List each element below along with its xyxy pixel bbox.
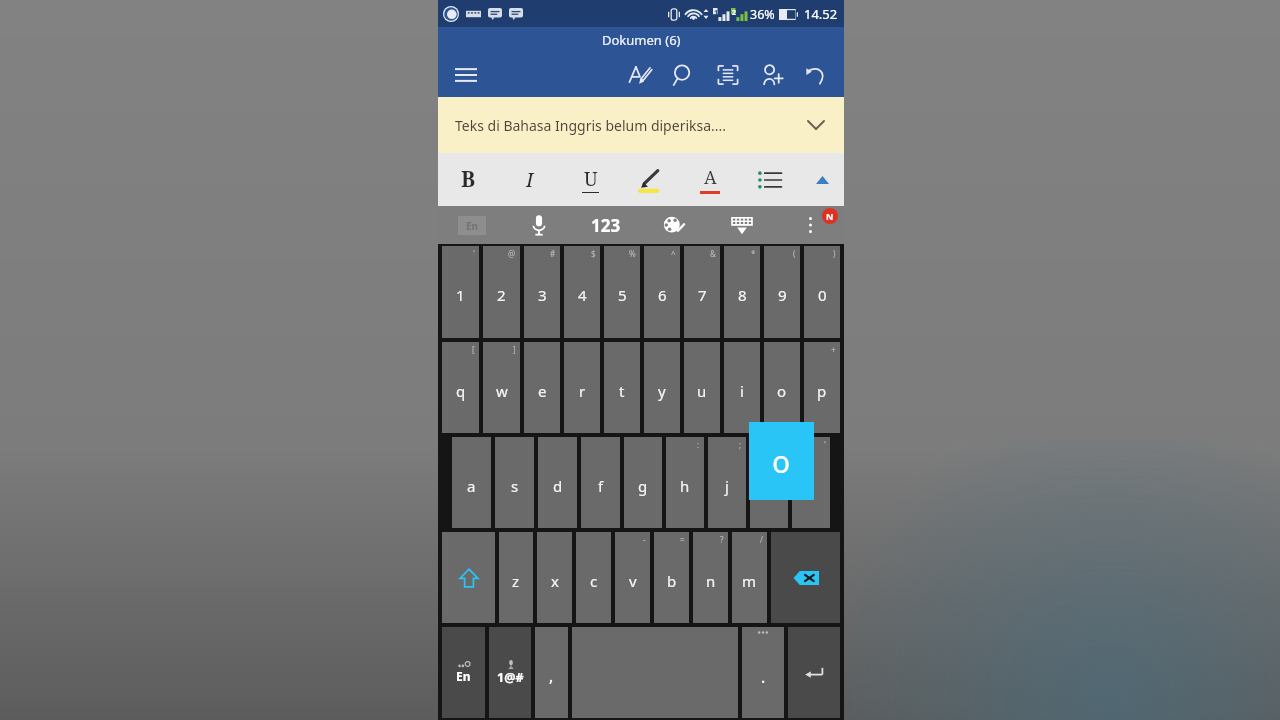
- button[interactable]: n: [693, 532, 728, 623]
- staticText: y: [658, 381, 666, 401]
- button[interactable]: 0: [804, 246, 840, 338]
- button[interactable]: B: [438, 153, 499, 206]
- button[interactable]: b: [654, 532, 689, 623]
- button[interactable]: x: [537, 532, 572, 623]
- button[interactable]: 123: [572, 206, 640, 244]
- button[interactable]: k: [750, 437, 788, 528]
- staticText: ': [473, 248, 475, 259]
- staticText: f: [598, 476, 604, 496]
- staticText: e: [538, 381, 547, 401]
- staticText: o: [772, 441, 791, 482]
- staticText: 7: [698, 285, 707, 305]
- button[interactable]: Symbols: [489, 627, 531, 718]
- staticText: A: [704, 165, 717, 190]
- button[interactable]: y: [644, 342, 680, 433]
- staticText: q: [456, 381, 466, 401]
- button[interactable]: l: [792, 437, 830, 528]
- staticText: B: [461, 165, 476, 194]
- staticText: :: [697, 439, 700, 450]
- button[interactable]: i: [724, 342, 760, 433]
- button[interactable]: e: [524, 342, 560, 433]
- button[interactable]: More options: [776, 206, 844, 244]
- staticText: g: [638, 476, 648, 496]
- button[interactable]: Undo: [794, 55, 838, 95]
- button[interactable]: Shift: [442, 532, 495, 623]
- button[interactable]: v: [615, 532, 650, 623]
- button[interactable]: Backspace: [771, 532, 840, 623]
- button[interactable]: Search: [662, 55, 706, 95]
- button[interactable]: d: [538, 437, 577, 528]
- button[interactable]: Comma: [535, 627, 568, 718]
- button[interactable]: 4: [564, 246, 600, 338]
- button[interactable]: f: [581, 437, 620, 528]
- button[interactable]: 5: [604, 246, 640, 338]
- button[interactable]: Menu: [448, 57, 484, 93]
- button[interactable]: Share with people: [750, 55, 794, 95]
- staticText: 5: [618, 285, 627, 305]
- staticText: 4: [578, 285, 587, 305]
- staticText: s: [511, 476, 519, 496]
- button[interactable]: 6: [644, 246, 680, 338]
- button[interactable]: g: [624, 437, 662, 528]
- button[interactable]: Scan: [706, 55, 750, 95]
- staticText: 0: [818, 285, 827, 305]
- button[interactable]: 9: [764, 246, 800, 338]
- button[interactable]: m: [732, 532, 767, 623]
- button[interactable]: 8: [724, 246, 760, 338]
- staticText: /: [760, 534, 763, 545]
- button[interactable]: More formatting: [800, 153, 844, 206]
- staticText: ?: [720, 534, 724, 545]
- button[interactable]: A: [680, 153, 740, 206]
- staticText: c: [590, 571, 598, 591]
- staticText: ': [824, 439, 826, 450]
- button[interactable]: Voice input: [505, 206, 572, 244]
- button[interactable]: 2: [483, 246, 520, 338]
- staticText: En: [456, 668, 471, 684]
- staticText: h: [680, 476, 690, 496]
- button[interactable]: u: [684, 342, 720, 433]
- staticText: 14.52: [804, 5, 838, 23]
- other: Key o preview: [749, 422, 814, 500]
- other: Expand: [796, 105, 836, 145]
- button[interactable]: I: [499, 153, 560, 206]
- button[interactable]: Language: [442, 627, 485, 718]
- button[interactable]: Draw: [618, 55, 662, 95]
- button[interactable]: Emoji and themes: [640, 206, 708, 244]
- staticText: i: [740, 381, 744, 401]
- button[interactable]: q: [442, 342, 479, 433]
- staticText: x: [551, 571, 559, 591]
- staticText: 9: [778, 285, 787, 305]
- button[interactable]: Teks di Bahasa Inggris belum diperiksa..…: [438, 97, 844, 153]
- staticText: ^: [671, 248, 676, 259]
- staticText: Dokumen (6): [602, 31, 681, 49]
- staticText: n: [706, 571, 716, 591]
- button[interactable]: c: [576, 532, 611, 623]
- button[interactable]: Hide keyboard: [708, 206, 776, 244]
- button[interactable]: p: [804, 342, 840, 433]
- button[interactable]: Period: [742, 627, 784, 718]
- button[interactable]: En: [438, 206, 505, 244]
- button[interactable]: U: [560, 153, 620, 206]
- button[interactable]: a: [452, 437, 491, 528]
- button[interactable]: Enter: [788, 627, 840, 718]
- button[interactable]: w: [483, 342, 520, 433]
- staticText: -: [643, 534, 646, 545]
- staticText: ]: [513, 344, 516, 355]
- button[interactable]: [620, 153, 680, 206]
- staticText: ;: [739, 439, 742, 450]
- button[interactable]: z: [499, 532, 533, 623]
- button[interactable]: o: [764, 342, 800, 433]
- button[interactable]: s: [495, 437, 534, 528]
- button[interactable]: j: [708, 437, 746, 528]
- button[interactable]: 1: [442, 246, 479, 338]
- button[interactable]: t: [604, 342, 640, 433]
- button[interactable]: 7: [684, 246, 720, 338]
- button[interactable]: r: [564, 342, 600, 433]
- button[interactable]: h: [666, 437, 704, 528]
- button[interactable]: [740, 153, 800, 206]
- button[interactable]: 3: [524, 246, 560, 338]
- staticText: v: [629, 571, 637, 591]
